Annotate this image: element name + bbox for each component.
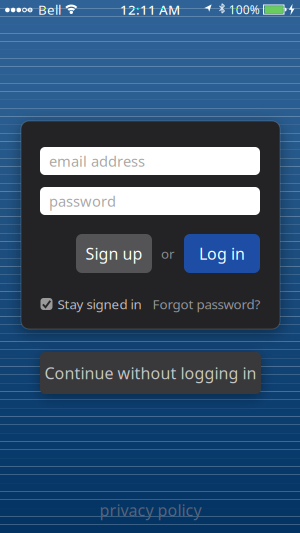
- button[interactable]: Log in: [184, 234, 260, 273]
- staticText: password: [49, 191, 116, 211]
- button[interactable]: Stay signed in: [40, 295, 141, 313]
- staticText: Bell: [38, 1, 61, 18]
- staticText: Continue without logging in: [44, 362, 256, 384]
- staticText: Stay signed in: [57, 295, 141, 313]
- button[interactable]: email address: [40, 147, 260, 175]
- button[interactable]: password: [40, 187, 260, 215]
- staticText: Log in: [199, 243, 245, 264]
- button[interactable]: Sign up: [76, 234, 152, 273]
- button[interactable]: Continue without logging in: [40, 352, 261, 394]
- staticText: 12:11 AM: [120, 1, 180, 18]
- staticText: Forgot password?: [152, 295, 260, 313]
- staticText: 100%: [229, 1, 260, 17]
- staticText: privacy policy: [99, 499, 201, 521]
- button[interactable]: Forgot password?: [152, 295, 260, 313]
- staticText: Sign up: [85, 243, 142, 264]
- staticText: or: [161, 245, 175, 262]
- staticText: email address: [49, 151, 145, 171]
- button[interactable]: privacy policy: [99, 499, 201, 521]
